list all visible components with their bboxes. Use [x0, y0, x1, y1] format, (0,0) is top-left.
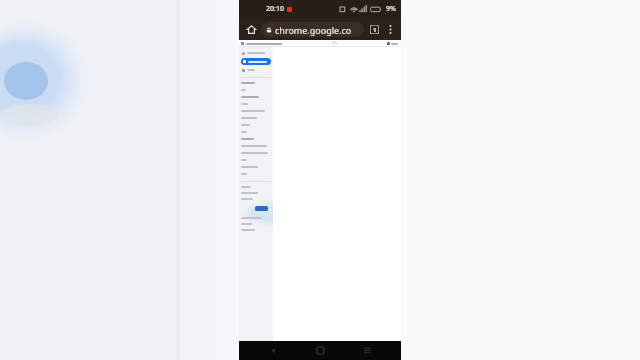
button[interactable] [241, 172, 271, 176]
button[interactable] [241, 88, 271, 92]
staticText: chrome.google.com/wel [275, 24, 359, 36]
button[interactable] [241, 102, 271, 106]
button[interactable] [241, 109, 271, 113]
button[interactable] [241, 185, 271, 189]
button[interactable] [241, 165, 271, 169]
button[interactable] [241, 81, 271, 85]
button[interactable] [241, 151, 271, 155]
button[interactable] [241, 144, 271, 148]
button[interactable]: More options [383, 22, 397, 36]
button[interactable] [241, 216, 271, 220]
button[interactable] [241, 58, 271, 65]
button[interactable] [241, 228, 271, 232]
button[interactable] [255, 206, 268, 211]
staticText: 20:10 [266, 4, 284, 14]
button[interactable]: Switch tabs [367, 22, 382, 37]
button[interactable] [241, 197, 271, 201]
button[interactable]: Home [243, 21, 259, 37]
button[interactable]: chrome.google.com/wel [261, 22, 364, 37]
button[interactable] [241, 130, 271, 134]
button[interactable]: Recent apps [354, 341, 380, 360]
staticText: 1 [373, 26, 377, 34]
button[interactable]: Back [260, 341, 286, 360]
button[interactable] [241, 222, 271, 226]
button[interactable] [241, 95, 271, 99]
button[interactable] [241, 191, 271, 195]
button[interactable] [241, 116, 271, 120]
button[interactable]: Home [307, 341, 333, 360]
button[interactable] [241, 50, 271, 56]
button[interactable] [241, 67, 271, 73]
button[interactable] [241, 137, 271, 141]
button[interactable] [241, 123, 271, 127]
staticText: 9% [386, 4, 396, 14]
button[interactable] [241, 158, 271, 162]
